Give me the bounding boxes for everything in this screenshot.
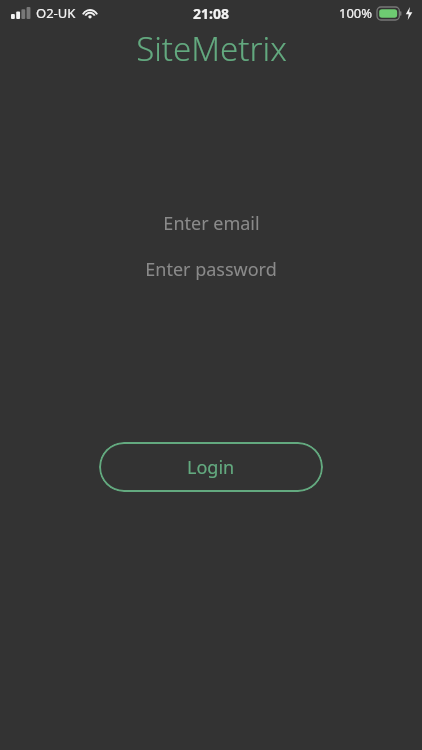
staticText: SiteMetrix: [136, 26, 287, 71]
button[interactable]: Enter email: [0, 207, 422, 239]
staticText: Enter password: [145, 257, 277, 282]
staticText: Login: [187, 455, 235, 480]
staticText: 100%: [339, 4, 373, 22]
staticText: Enter email: [163, 211, 260, 236]
button[interactable]: Login: [99, 442, 323, 492]
staticText: 21:08: [193, 4, 229, 23]
staticText: O2-UK: [36, 4, 76, 22]
button[interactable]: Enter password: [0, 253, 422, 285]
